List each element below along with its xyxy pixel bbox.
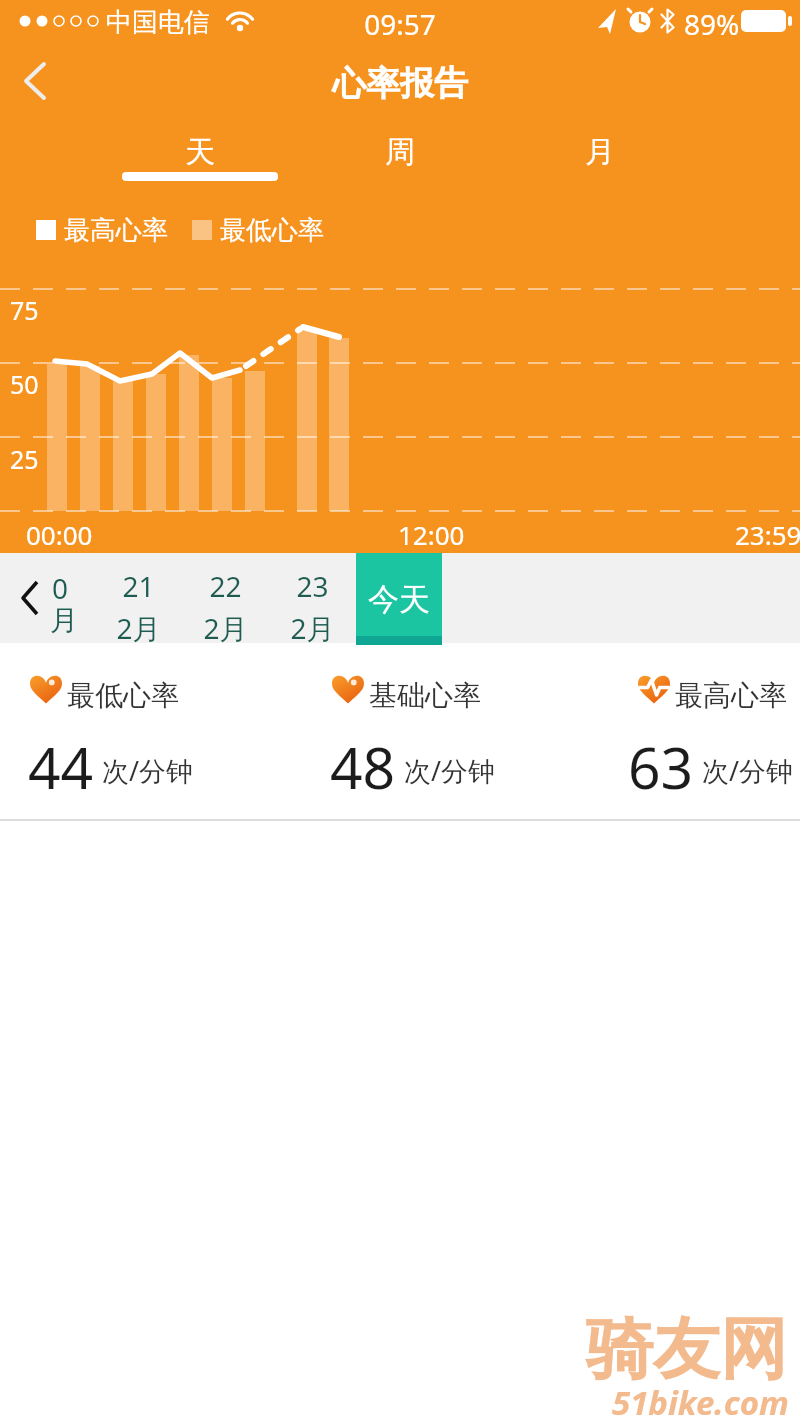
staticText: 09:57 xyxy=(0,5,800,43)
staticText: 周 xyxy=(385,133,415,171)
staticText: 50 xyxy=(10,367,39,401)
staticText: 次/分钟 xyxy=(702,752,794,789)
staticText: 22 xyxy=(209,567,242,605)
staticText: 次/分钟 xyxy=(102,752,194,789)
staticText: 最高心率 xyxy=(675,678,787,713)
button[interactable]: 23 xyxy=(269,553,356,643)
staticText: 23:59 xyxy=(735,517,800,552)
staticText: 89% xyxy=(684,5,740,43)
staticText: 基础心率 xyxy=(369,678,481,713)
staticText: 21 xyxy=(122,567,155,605)
button[interactable]: 周 xyxy=(300,122,500,182)
staticText: 月 xyxy=(50,603,78,638)
button[interactable]: 21 xyxy=(95,553,182,643)
staticText: 2月 xyxy=(116,609,161,643)
staticText: 心率报告 xyxy=(0,62,800,105)
staticText: 2月 xyxy=(290,609,335,643)
button[interactable]: 今天 xyxy=(356,553,442,645)
staticText: 中国电信 xyxy=(106,6,210,39)
staticText: 51bike.com xyxy=(612,1380,789,1422)
staticText: 月 xyxy=(585,133,615,171)
button[interactable] xyxy=(8,573,52,623)
staticText: 48 xyxy=(330,728,396,806)
staticText: 最低心率 xyxy=(220,214,324,247)
staticText: 12:00 xyxy=(398,517,465,552)
staticText: 23 xyxy=(296,567,329,605)
staticText: 骑友网 xyxy=(586,1307,787,1391)
staticText: 最高心率 xyxy=(64,214,168,247)
staticText: 25 xyxy=(10,442,39,476)
staticText: 44 xyxy=(28,728,94,806)
staticText: 最低心率 xyxy=(67,678,179,713)
button[interactable]: 月 xyxy=(500,122,700,182)
button[interactable]: 22 xyxy=(182,553,269,643)
staticText: 次/分钟 xyxy=(404,752,496,789)
staticText: 0 xyxy=(52,569,69,607)
button[interactable] xyxy=(10,56,60,106)
staticText: 2月 xyxy=(203,609,248,643)
staticText: 63 xyxy=(628,728,694,806)
staticText: 75 xyxy=(10,293,39,327)
staticText: 天 xyxy=(185,133,215,171)
staticText: 今天 xyxy=(368,580,430,619)
staticText: 00:00 xyxy=(26,517,93,552)
button[interactable]: 天 xyxy=(100,122,300,182)
